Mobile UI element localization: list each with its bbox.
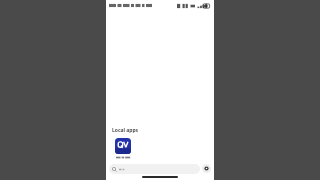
button[interactable]	[109, 164, 200, 174]
button[interactable]	[112, 137, 134, 160]
staticText: Local apps	[112, 127, 139, 134]
button[interactable]: Voice search	[202, 164, 211, 173]
